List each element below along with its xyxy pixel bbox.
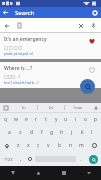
staticText: In bbox=[22, 105, 26, 110]
staticText: a bbox=[8, 129, 11, 136]
staticText: l bbox=[91, 129, 93, 136]
button[interactable]: Clear bbox=[74, 19, 87, 32]
button[interactable]: Favorite bbox=[87, 65, 97, 75]
staticText: x bbox=[27, 142, 30, 149]
staticText: k bbox=[81, 129, 84, 136]
staticText: It's an emergency bbox=[4, 36, 47, 43]
staticText: ?123 bbox=[4, 157, 13, 162]
button[interactable]: Search bbox=[85, 152, 101, 166]
button[interactable]: In bbox=[11, 103, 37, 112]
staticText: □□□...? bbox=[4, 74, 21, 79]
staticText: □ □ □ □ bbox=[4, 45, 23, 50]
staticText: d bbox=[30, 129, 34, 136]
button[interactable]: t bbox=[41, 113, 51, 126]
button[interactable]: g bbox=[47, 126, 57, 139]
button[interactable]: o bbox=[81, 113, 91, 126]
staticText: . bbox=[80, 156, 82, 163]
button[interactable]: . bbox=[77, 152, 85, 166]
button[interactable]: ?123 bbox=[0, 152, 16, 166]
button[interactable]: r bbox=[31, 113, 41, 126]
button[interactable]: Where is ...? bbox=[0, 62, 101, 88]
button[interactable]: Recents bbox=[51, 166, 76, 180]
button[interactable]: x bbox=[23, 139, 33, 152]
staticText: g bbox=[50, 129, 54, 136]
staticText: t bbox=[45, 116, 47, 123]
staticText: c bbox=[37, 142, 40, 149]
staticText: Where is ...? bbox=[4, 65, 33, 72]
staticText: , bbox=[20, 156, 22, 163]
staticText: r bbox=[35, 116, 38, 123]
staticText: i bbox=[75, 116, 77, 123]
staticText: z bbox=[17, 142, 20, 149]
staticText: e bbox=[25, 116, 28, 123]
staticText: b bbox=[58, 142, 62, 149]
staticText: h bbox=[60, 129, 64, 136]
button[interactable]: v bbox=[43, 139, 54, 152]
button[interactable]: i bbox=[71, 113, 81, 126]
button[interactable]: Emoji bbox=[25, 152, 34, 166]
button[interactable]: Favorite bbox=[87, 36, 97, 46]
staticText: p bbox=[94, 116, 98, 123]
button[interactable]: More bbox=[76, 166, 101, 180]
button[interactable]: w bbox=[11, 113, 21, 126]
button[interactable]: e bbox=[21, 113, 31, 126]
button[interactable]: Back bbox=[0, 19, 13, 32]
staticText: y bbox=[55, 116, 58, 123]
staticText: j bbox=[71, 129, 73, 136]
button[interactable]: m bbox=[76, 139, 87, 152]
button[interactable]: Keyboard settings bbox=[91, 103, 101, 112]
button[interactable]: l bbox=[87, 126, 97, 139]
button[interactable]: s bbox=[15, 126, 26, 139]
staticText: o bbox=[84, 116, 88, 123]
button[interactable]: Back bbox=[0, 166, 26, 180]
staticText: f bbox=[41, 129, 43, 136]
button[interactable]: j bbox=[67, 126, 77, 139]
button[interactable]: q bbox=[0, 113, 11, 126]
button[interactable]: Search bbox=[80, 79, 95, 94]
button[interactable]: Shift bbox=[0, 139, 13, 152]
button[interactable]: n bbox=[65, 139, 76, 152]
button[interactable]: d bbox=[26, 126, 37, 139]
staticText: w bbox=[14, 116, 18, 123]
staticText: m bbox=[79, 142, 84, 149]
button[interactable]: Voice search bbox=[87, 19, 100, 32]
button[interactable]: p bbox=[91, 113, 101, 126]
button[interactable]: u bbox=[61, 113, 71, 126]
button[interactable]: Page bbox=[13, 19, 26, 32]
button[interactable]: Backspace bbox=[87, 139, 101, 152]
button[interactable]: h bbox=[57, 126, 67, 139]
staticText: km1.ekzeh.hark...? bbox=[4, 80, 39, 85]
staticText: q bbox=[4, 116, 8, 123]
button[interactable]: b bbox=[54, 139, 65, 152]
button[interactable]: f bbox=[37, 126, 47, 139]
button[interactable]: z bbox=[13, 139, 23, 152]
button[interactable]: how bbox=[65, 103, 91, 112]
button[interactable]: k bbox=[77, 126, 87, 139]
staticText: Id bbox=[49, 105, 53, 110]
button[interactable]: Home bbox=[26, 166, 51, 180]
staticText: n bbox=[69, 142, 73, 149]
button[interactable]: c bbox=[33, 139, 43, 152]
button[interactable]: Id bbox=[38, 103, 64, 112]
staticText: s bbox=[19, 129, 22, 136]
staticText: u bbox=[64, 116, 68, 123]
button[interactable]: Settings bbox=[89, 7, 100, 18]
staticText: Search bbox=[15, 9, 35, 17]
button[interactable]: Clipboard bbox=[0, 103, 11, 112]
staticText: how bbox=[74, 105, 82, 110]
button[interactable]: a bbox=[4, 126, 15, 139]
button[interactable]: y bbox=[51, 113, 61, 126]
button[interactable]: It's an emergency bbox=[0, 33, 101, 59]
button[interactable]: , bbox=[16, 152, 25, 166]
button[interactable]: Back bbox=[0, 7, 11, 18]
staticText: v bbox=[47, 142, 50, 149]
staticText: park.jd.expol.nl bbox=[4, 51, 33, 56]
